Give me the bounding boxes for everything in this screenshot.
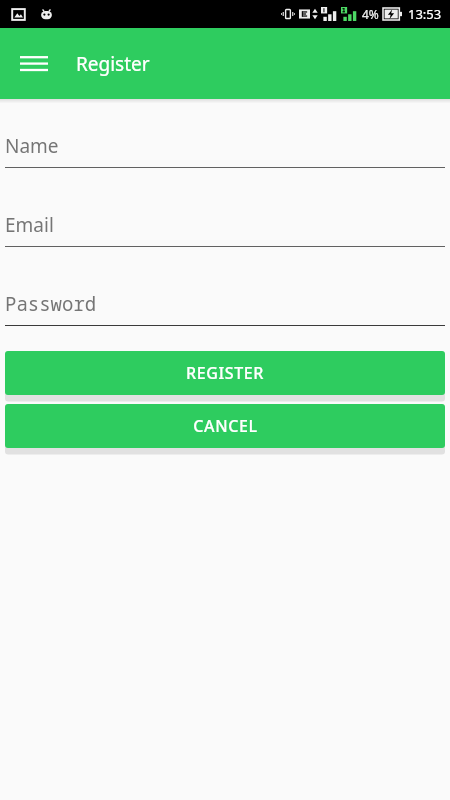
staticText: REGISTER	[186, 362, 264, 384]
button[interactable]: REGISTER	[5, 351, 445, 395]
button[interactable]: Name	[5, 133, 445, 168]
staticText: CANCEL	[193, 415, 258, 437]
button[interactable]: Email	[5, 212, 445, 247]
staticText: Email	[5, 212, 54, 238]
staticText: Register	[76, 51, 150, 77]
button[interactable]: Password	[5, 291, 445, 326]
staticText: Password	[5, 291, 97, 317]
button[interactable]: CANCEL	[5, 404, 445, 448]
staticText: 13:53	[408, 5, 442, 23]
staticText: Name	[5, 133, 59, 159]
staticText: 4%	[362, 6, 379, 22]
button[interactable]: Open navigation menu	[10, 40, 58, 88]
